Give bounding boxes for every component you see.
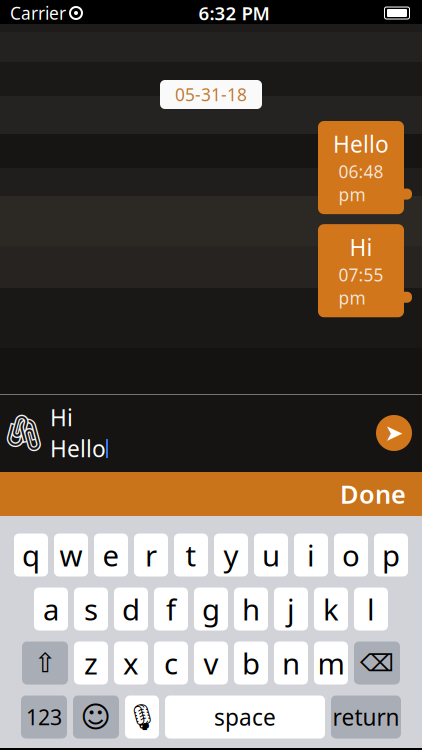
staticText: 06:48 pm [338, 160, 383, 206]
staticText: ⇧ [34, 648, 56, 678]
staticText: l [367, 589, 375, 628]
staticText: ⌫ [360, 649, 394, 677]
staticText: space [214, 702, 276, 732]
button[interactable]: Send [366, 405, 422, 461]
button[interactable]: Done [324, 467, 422, 521]
staticText: k [323, 589, 339, 628]
button[interactable]: r [134, 533, 168, 576]
staticText: b [242, 643, 260, 682]
staticText: Done [340, 477, 406, 511]
staticText: c [164, 643, 178, 682]
button[interactable]: o [334, 533, 368, 576]
button[interactable]: g [194, 587, 228, 630]
button[interactable]: m [314, 641, 348, 684]
staticText: GT Test [144, 24, 277, 76]
button[interactable]: c [154, 641, 188, 684]
staticText: 6:32 PM [198, 1, 269, 25]
staticText: y [223, 535, 238, 574]
staticText: g [202, 589, 220, 628]
staticText: m [317, 643, 344, 682]
button[interactable]: q [14, 533, 48, 576]
button[interactable]: return [331, 695, 401, 738]
button[interactable]: a [34, 587, 68, 630]
button[interactable]: d [114, 587, 148, 630]
staticText: i [307, 535, 315, 574]
staticText: v [203, 643, 218, 682]
button[interactable]: f [154, 587, 188, 630]
staticText: d [122, 589, 140, 628]
staticText: w [59, 535, 82, 574]
staticText: p [382, 535, 400, 574]
button[interactable]: w [54, 533, 88, 576]
staticText: Carrier [10, 1, 66, 24]
button[interactable]: s [74, 587, 108, 630]
staticText: Hello [333, 129, 389, 159]
staticText: a [43, 589, 59, 628]
button[interactable]: x [114, 641, 148, 684]
staticText: o [342, 535, 360, 574]
button[interactable]: h [234, 587, 268, 630]
staticText: f [166, 589, 176, 628]
button[interactable]: i [294, 533, 328, 576]
staticText: Hello [50, 433, 106, 464]
staticText: ➤ [384, 420, 403, 446]
button[interactable]: 123 [21, 695, 67, 738]
button[interactable]: y [214, 533, 248, 576]
staticText: 05-31-18 [175, 83, 247, 106]
button[interactable]: v [194, 641, 228, 684]
staticText: e [102, 535, 119, 574]
staticText: 07:55 pm [338, 263, 383, 309]
staticText: s [84, 589, 98, 628]
staticText: x [123, 643, 139, 682]
staticText: r [145, 535, 157, 574]
button[interactable]: space [165, 695, 325, 738]
button[interactable]: b [234, 641, 268, 684]
staticText: q [22, 535, 40, 574]
button[interactable]: e [94, 533, 128, 576]
button[interactable]: 🎙 [125, 695, 159, 738]
button[interactable]: z [74, 641, 108, 684]
button[interactable]: ☺ [73, 695, 119, 738]
staticText: h [242, 589, 260, 628]
button[interactable]: l [354, 587, 388, 630]
button[interactable]: p [374, 533, 408, 576]
staticText: n [282, 643, 300, 682]
button[interactable]: u [254, 533, 288, 576]
staticText: 123 [26, 703, 62, 731]
staticText: ‹ [17, 13, 32, 87]
button[interactable]: Back [0, 25, 50, 75]
staticText: t [185, 535, 196, 574]
staticText: j [287, 589, 295, 628]
staticText: Hi [50, 402, 73, 432]
staticText: 🎙 [126, 702, 158, 731]
button[interactable]: t [174, 533, 208, 576]
button[interactable]: k [314, 587, 348, 630]
button[interactable]: j [274, 587, 308, 630]
button[interactable]: ⇧ [22, 641, 68, 684]
button[interactable]: n [274, 641, 308, 684]
staticText: ☺ [80, 700, 111, 734]
button[interactable]: ⌫ [354, 641, 400, 684]
staticText: z [84, 643, 98, 682]
staticText: 🖇 [1, 412, 47, 453]
staticText: return [332, 702, 399, 732]
staticText: u [262, 535, 280, 574]
button[interactable]: Attach file [0, 407, 48, 459]
staticText: Hi [349, 232, 372, 262]
